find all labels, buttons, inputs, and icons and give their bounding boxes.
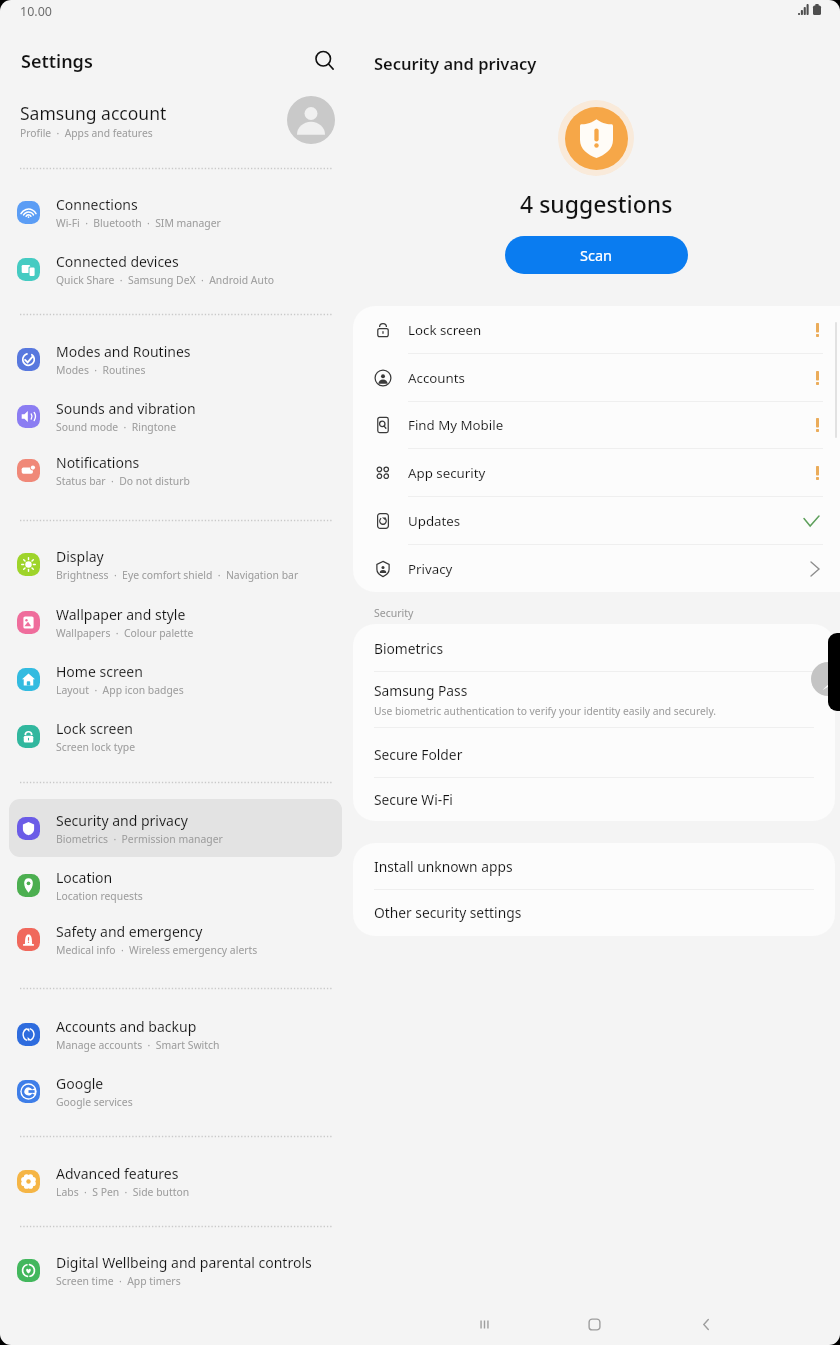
staticText: Modes · Routines (56, 363, 146, 377)
staticText: Wi-Fi · Bluetooth · SIM manager (56, 216, 221, 230)
staticText: Location (56, 868, 113, 887)
staticText: Modes and Routines (56, 342, 191, 361)
button[interactable]: Home (571, 1301, 617, 1345)
button[interactable]: Home screen (9, 650, 342, 708)
staticText: 4 suggestions (520, 188, 673, 219)
staticText: Security and privacy (56, 811, 188, 830)
staticText: Scan (580, 245, 613, 265)
button[interactable]: Display (9, 535, 342, 593)
button[interactable]: Privacy (353, 545, 840, 592)
staticText: Display (56, 547, 104, 566)
button[interactable]: Other security settings (353, 889, 835, 936)
staticText: Digital Wellbeing and parental controls (56, 1253, 312, 1272)
staticText: Privacy (408, 560, 811, 578)
staticText: Use biometric authentication to verify y… (374, 704, 717, 718)
staticText: Sound mode · Ringtone (56, 420, 177, 434)
button[interactable]: Modes and Routines (9, 330, 342, 388)
button[interactable]: Digital Wellbeing and parental controls (9, 1241, 342, 1299)
staticText: Secure Wi-Fi (374, 790, 453, 809)
staticText: Quick Share · Samsung DeX · Android Auto (56, 273, 274, 287)
staticText: Google (56, 1074, 104, 1093)
staticText: Samsung Pass (374, 681, 468, 700)
button[interactable]: Lock screen (9, 707, 342, 765)
staticText: Secure Folder (374, 745, 463, 764)
button[interactable]: Lock screen (353, 306, 840, 354)
button[interactable]: Secure Wi-Fi (353, 777, 835, 821)
staticText: Screen time · App timers (56, 1274, 181, 1288)
button[interactable]: Connected devices (9, 240, 342, 298)
staticText: Screen lock type (56, 740, 136, 754)
button[interactable]: Connections (9, 183, 342, 241)
button[interactable]: Find My Mobile (353, 401, 840, 449)
staticText: App security (408, 464, 816, 482)
staticText: Other security settings (374, 903, 522, 922)
staticText: Sounds and vibration (56, 399, 196, 418)
staticText: Manage accounts · Smart Switch (56, 1038, 220, 1052)
button[interactable]: Notifications (9, 441, 342, 499)
staticText: Brightness · Eye comfort shield · Naviga… (56, 568, 299, 582)
button[interactable]: App security (353, 449, 840, 497)
staticText: Biometrics · Permission manager (56, 832, 223, 846)
button[interactable]: Install unknown apps (353, 843, 835, 890)
staticText: Profile · Apps and features (20, 126, 153, 140)
button[interactable]: Safety and emergency (9, 910, 342, 968)
staticText: Biometrics (374, 639, 444, 658)
staticText: Lock screen (408, 321, 816, 339)
staticText: Advanced features (56, 1164, 179, 1183)
staticText: Layout · App icon badges (56, 683, 184, 697)
button[interactable]: Secure Folder (353, 730, 835, 778)
staticText: Security (374, 606, 414, 620)
button[interactable]: Samsung account (0, 92, 352, 150)
button[interactable]: Security and privacy (9, 799, 342, 857)
button[interactable]: Sounds and vibration (9, 387, 342, 445)
staticText: Updates (408, 512, 804, 530)
staticText: 10.00 (20, 3, 52, 20)
staticText: Connections (56, 195, 138, 214)
button[interactable]: Search (305, 41, 345, 81)
staticText: Home screen (56, 662, 143, 681)
staticText: Accounts and backup (56, 1017, 197, 1036)
staticText: Lock screen (56, 719, 134, 738)
button[interactable]: Samsung Pass (353, 670, 835, 728)
button[interactable]: Recent apps (461, 1301, 507, 1345)
staticText: Location requests (56, 889, 143, 903)
staticText: Wallpapers · Colour palette (56, 626, 194, 640)
staticText: Security and privacy (374, 52, 537, 74)
button[interactable]: Location (9, 856, 342, 914)
button[interactable]: Google (9, 1062, 342, 1120)
button[interactable]: Advanced features (9, 1152, 342, 1210)
button[interactable]: Wallpaper and style (9, 593, 342, 651)
staticText: Connected devices (56, 252, 179, 271)
staticText: Settings (21, 49, 93, 74)
button[interactable]: Updates (353, 497, 840, 545)
staticText: Medical info · Wireless emergency alerts (56, 943, 258, 957)
staticText: Find My Mobile (408, 416, 816, 434)
button[interactable]: Accounts (353, 354, 840, 402)
staticText: Labs · S Pen · Side button (56, 1185, 190, 1199)
staticText: Accounts (408, 369, 816, 387)
button[interactable]: Accounts and backup (9, 1005, 342, 1063)
staticText: Safety and emergency (56, 922, 203, 941)
staticText: Install unknown apps (374, 857, 513, 876)
staticText: Samsung account (20, 101, 167, 125)
staticText: Notifications (56, 453, 140, 472)
staticText: Google services (56, 1095, 133, 1109)
button[interactable]: Scan (505, 236, 688, 274)
staticText: Wallpaper and style (56, 605, 186, 624)
button[interactable]: Biometrics (353, 624, 835, 672)
button[interactable]: Back (683, 1301, 729, 1345)
staticText: Status bar · Do not disturb (56, 474, 190, 488)
